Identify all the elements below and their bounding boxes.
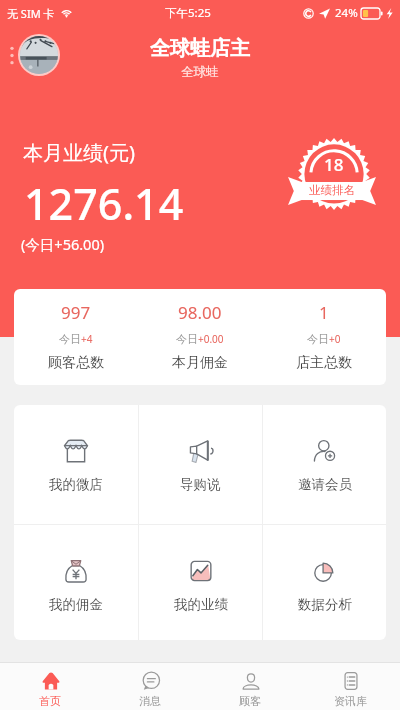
staticText: 业绩排名 [309,183,355,197]
button[interactable]: 997 [14,289,138,385]
button[interactable]: More options [4,43,20,67]
button[interactable]: 我的佣金 [14,525,138,640]
staticText: 我的佣金 [49,596,103,613]
staticText: 资讯库 [334,694,367,708]
staticText: 今日 [307,332,329,346]
button[interactable]: 邀请会员 [263,405,386,524]
staticText: 全球蛙 [181,64,219,80]
staticText: 顾客 [239,694,261,708]
staticText: 997 [61,301,91,324]
staticText: 1 [319,301,329,324]
staticText: 今日 [59,332,81,346]
button[interactable]: 顾客 [200,663,300,710]
staticText: (今日+56.00) [21,234,105,254]
staticText: 1276.14 [24,174,184,233]
staticText: 本月佣金 [172,354,228,372]
staticText: 店主总数 [296,354,352,372]
staticText: 消息 [139,694,161,708]
button[interactable]: 1 [262,289,386,385]
button[interactable]: 导购说 [139,405,262,524]
button[interactable]: 我的微店 [14,405,138,524]
staticText: 数据分析 [298,596,352,613]
button[interactable]: 首页 [0,663,100,710]
staticText: 邀请会员 [298,476,352,493]
button[interactable]: 资讯库 [300,663,400,710]
staticText: +0.00 [198,332,224,346]
staticText: +0 [329,332,341,346]
button[interactable]: 消息 [100,663,200,710]
staticText: 下午5:25 [165,5,211,21]
staticText: 全球蛙店主 [150,36,250,61]
button[interactable]: 数据分析 [263,525,386,640]
staticText: 导购说 [180,476,221,493]
staticText: 本月业绩(元) [23,139,135,166]
staticText: 18 [324,153,344,176]
staticText: 我的微店 [49,476,103,493]
button[interactable]: Profile avatar [20,36,58,74]
staticText: 无 SIM 卡 [7,6,55,21]
staticText: 今日 [176,332,198,346]
button[interactable]: 我的业绩 [139,525,262,640]
staticText: 首页 [39,694,61,708]
staticText: 98.00 [178,301,222,324]
staticText: 24% [335,5,358,21]
staticText: 顾客总数 [48,354,104,372]
staticText: 我的业绩 [174,596,228,613]
staticText: +4 [81,332,93,346]
button[interactable]: 98.00 [138,289,262,385]
